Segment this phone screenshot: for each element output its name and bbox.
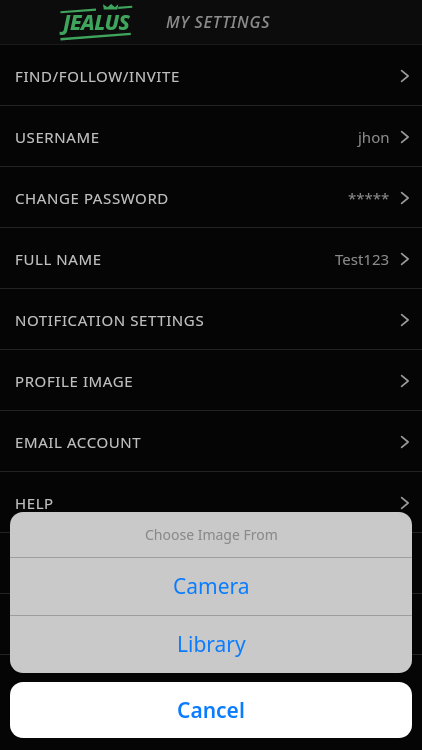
staticText: ABOUT (15, 554, 69, 574)
staticText: EMAIL ACCOUNT (15, 432, 142, 452)
staticText: LOGOUT (15, 615, 80, 635)
button[interactable]: HELP (0, 472, 422, 533)
staticText: HELP (15, 493, 54, 513)
staticText: FULL NAME (15, 249, 102, 269)
staticText: Choose Image From (145, 525, 278, 544)
button[interactable]: FIND/FOLLOW/INVITE (0, 45, 422, 106)
staticText: Camera (173, 572, 250, 601)
staticText: JEALUS (63, 8, 130, 37)
button[interactable]: Library (10, 616, 412, 673)
staticText: MY SETTINGS (166, 11, 271, 33)
staticText: FIND/FOLLOW/INVITE (15, 66, 180, 86)
staticText: Cancel (177, 696, 245, 725)
button[interactable]: Cancel (10, 682, 412, 738)
button[interactable]: FULL NAME (0, 228, 422, 289)
staticText: USERNAME (15, 127, 100, 147)
staticText: NOTIFICATION SETTINGS (15, 310, 205, 330)
staticText: Test123 (335, 249, 390, 269)
staticText: PROFILE IMAGE (15, 371, 134, 391)
button[interactable]: NOTIFICATION SETTINGS (0, 289, 422, 350)
button[interactable]: LOGOUT (0, 594, 422, 655)
button[interactable]: Camera (10, 558, 412, 615)
button[interactable]: USERNAME (0, 106, 422, 167)
button[interactable]: CHANGE PASSWORD (0, 167, 422, 228)
staticText: jhon (358, 127, 390, 147)
button[interactable]: EMAIL ACCOUNT (0, 411, 422, 472)
staticText: ***** (348, 188, 390, 208)
staticText: Library (177, 630, 246, 659)
staticText: CHANGE PASSWORD (15, 188, 169, 208)
button[interactable]: ABOUT (0, 533, 422, 594)
button[interactable]: PROFILE IMAGE (0, 350, 422, 411)
